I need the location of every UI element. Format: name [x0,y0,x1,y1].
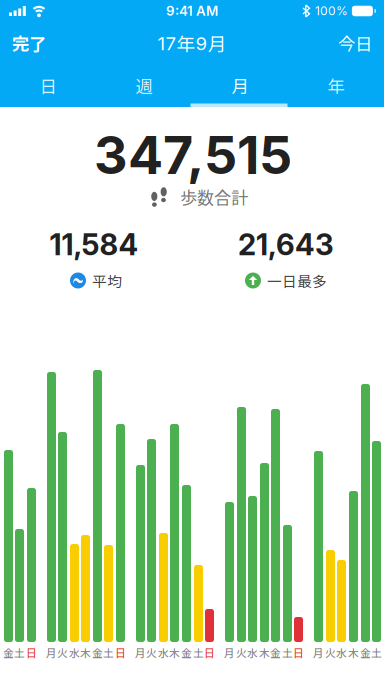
staticText: 木 [80,645,91,660]
staticText: 土 [193,645,204,660]
staticText: 日 [39,73,56,98]
button[interactable]: 年 [288,64,384,107]
staticText: 17年9月 [157,30,226,56]
staticText: 金 [3,645,14,660]
staticText: 火 [325,645,336,660]
staticText: 日 [115,645,126,660]
staticText: 月 [313,645,324,660]
staticText: 月 [46,645,57,660]
button[interactable]: 完了 [12,31,46,55]
staticText: 一日最多 [267,270,327,291]
staticText: 水 [247,645,258,660]
staticText: 歩数合計 [180,185,248,209]
staticText: 水 [158,645,169,660]
staticText: 日 [26,645,37,660]
staticText: 月 [224,645,235,660]
staticText: 水 [69,645,80,660]
staticText: 11,584 [49,227,138,262]
staticText: 金 [181,645,192,660]
staticText: 火 [146,645,157,660]
staticText: 347,515 [94,124,292,186]
staticText: 金 [360,645,371,660]
staticText: 金 [270,645,281,660]
staticText: 100% [315,4,348,18]
button[interactable]: 日 [0,64,96,107]
staticText: 今日 [338,31,372,55]
staticText: 日 [293,645,304,660]
staticText: 木 [348,645,359,660]
staticText: 月 [135,645,146,660]
staticText: 週 [135,73,152,98]
staticText: 水 [336,645,347,660]
staticText: 9:41 AM [166,3,218,19]
staticText: 土 [14,645,25,660]
staticText: 平均 [92,270,122,291]
staticText: 金 [92,645,103,660]
staticText: 火 [236,645,247,660]
staticText: 21,643 [238,227,334,262]
button[interactable]: 月 [192,64,288,107]
staticText: 日 [204,645,215,660]
button[interactable]: 今日 [338,31,372,55]
staticText: 土 [371,645,382,660]
staticText: 月 [231,73,248,98]
staticText: 木 [259,645,270,660]
staticText: 火 [57,645,68,660]
staticText: 木 [169,645,180,660]
staticText: 土 [103,645,114,660]
staticText: 完了 [12,31,46,55]
staticText: 土 [282,645,293,660]
staticText: 年 [327,73,344,98]
button[interactable]: 週 [96,64,192,107]
